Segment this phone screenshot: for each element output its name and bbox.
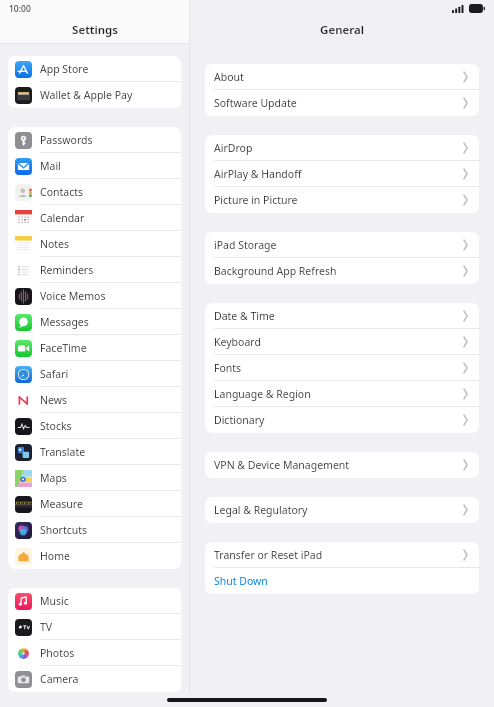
- button[interactable]: Camera: [8, 666, 181, 692]
- button[interactable]: TV: [8, 614, 181, 640]
- button[interactable]: Translate: [8, 439, 181, 465]
- button[interactable]: Wallet & Apple Pay: [8, 82, 181, 108]
- staticText: Maps: [40, 471, 67, 485]
- button[interactable]: Notes: [8, 231, 181, 257]
- button[interactable]: Keyboard: [205, 329, 479, 355]
- button[interactable]: Maps: [8, 465, 181, 491]
- button[interactable]: Messages: [8, 309, 181, 335]
- staticText: Date & Time: [214, 309, 275, 323]
- staticText: Shortcuts: [40, 523, 88, 537]
- staticText: Home: [40, 549, 70, 563]
- button[interactable]: Photos: [8, 640, 181, 666]
- staticText: Fonts: [214, 361, 242, 375]
- staticText: Calendar: [40, 211, 85, 225]
- button[interactable]: Shut Down: [205, 568, 479, 594]
- staticText: App Store: [40, 62, 89, 76]
- button[interactable]: Passwords: [8, 127, 181, 153]
- button[interactable]: Safari: [8, 361, 181, 387]
- button[interactable]: Shortcuts: [8, 517, 181, 543]
- button[interactable]: Language & Region: [205, 381, 479, 407]
- staticText: Language & Region: [214, 387, 311, 401]
- staticText: About: [214, 70, 244, 84]
- button[interactable]: VPN & Device Management: [205, 452, 479, 478]
- button[interactable]: Mail: [8, 153, 181, 179]
- button[interactable]: Measure: [8, 491, 181, 517]
- staticText: Transfer or Reset iPad: [214, 548, 323, 562]
- button[interactable]: Reminders: [8, 257, 181, 283]
- button[interactable]: Contacts: [8, 179, 181, 205]
- staticText: Measure: [40, 497, 83, 511]
- staticText: AirPlay & Handoff: [214, 167, 302, 181]
- staticText: Stocks: [40, 419, 72, 433]
- staticText: General: [320, 22, 364, 38]
- staticText: Safari: [40, 367, 69, 381]
- staticText: Messages: [40, 315, 89, 329]
- staticText: Dictionary: [214, 413, 265, 427]
- staticText: Wallet & Apple Pay: [40, 88, 133, 102]
- button[interactable]: iPad Storage: [205, 232, 479, 258]
- staticText: Passwords: [40, 133, 93, 147]
- staticText: Legal & Regulatory: [214, 503, 308, 517]
- button[interactable]: Music: [8, 588, 181, 614]
- staticText: Software Update: [214, 96, 297, 110]
- staticText: Photos: [40, 646, 75, 660]
- staticText: Keyboard: [214, 335, 261, 349]
- button[interactable]: Software Update: [205, 90, 479, 116]
- staticText: Mail: [40, 159, 61, 173]
- staticText: Contacts: [40, 185, 84, 199]
- staticText: Reminders: [40, 263, 94, 277]
- button[interactable]: AirDrop: [205, 135, 479, 161]
- button[interactable]: Voice Memos: [8, 283, 181, 309]
- staticText: Background App Refresh: [214, 264, 337, 278]
- button[interactable]: Background App Refresh: [205, 258, 479, 284]
- staticText: TV: [40, 620, 53, 634]
- staticText: FaceTime: [40, 341, 87, 355]
- button[interactable]: Legal & Regulatory: [205, 497, 479, 523]
- staticText: 10:00: [9, 3, 31, 15]
- button[interactable]: Calendar: [8, 205, 181, 231]
- staticText: Picture in Picture: [214, 193, 298, 207]
- button[interactable]: AirPlay & Handoff: [205, 161, 479, 187]
- staticText: Shut Down: [214, 574, 268, 588]
- button[interactable]: Home: [8, 543, 181, 569]
- staticText: Notes: [40, 237, 70, 251]
- button[interactable]: Dictionary: [205, 407, 479, 433]
- staticText: News: [40, 393, 67, 407]
- button[interactable]: News: [8, 387, 181, 413]
- button[interactable]: FaceTime: [8, 335, 181, 361]
- staticText: iPad Storage: [214, 238, 277, 252]
- other: Home indicator: [167, 698, 327, 702]
- button[interactable]: Picture in Picture: [205, 187, 479, 213]
- button[interactable]: App Store: [8, 56, 181, 82]
- staticText: Music: [40, 594, 69, 608]
- staticText: Settings: [72, 22, 118, 38]
- button[interactable]: Transfer or Reset iPad: [205, 542, 479, 568]
- button[interactable]: Fonts: [205, 355, 479, 381]
- staticText: VPN & Device Management: [214, 458, 350, 472]
- button[interactable]: Date & Time: [205, 303, 479, 329]
- button[interactable]: Stocks: [8, 413, 181, 439]
- staticText: Translate: [40, 445, 86, 459]
- button[interactable]: About: [205, 64, 479, 90]
- staticText: AirDrop: [214, 141, 253, 155]
- staticText: Voice Memos: [40, 289, 106, 303]
- staticText: Camera: [40, 672, 79, 686]
